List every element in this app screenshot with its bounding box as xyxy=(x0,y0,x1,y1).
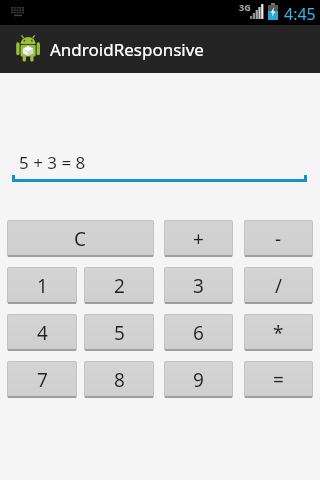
staticText: - xyxy=(275,226,282,252)
button[interactable]: - xyxy=(244,220,313,257)
staticText: AndroidResponsive xyxy=(50,38,204,61)
staticText: C xyxy=(74,226,87,252)
button[interactable]: 8 xyxy=(84,361,154,398)
staticText: 1 xyxy=(37,273,48,299)
staticText: 3 xyxy=(193,273,204,299)
staticText: 5 + 3 = 8 xyxy=(19,151,86,174)
button[interactable]: 3 xyxy=(164,267,233,304)
staticText: * xyxy=(273,320,284,346)
staticText: 9 xyxy=(193,367,204,393)
staticText: + xyxy=(193,226,204,252)
staticText: 6 xyxy=(193,320,204,346)
staticText: 8 xyxy=(114,367,125,393)
staticText: / xyxy=(275,273,283,299)
staticText: 4 xyxy=(37,320,48,346)
button[interactable]: 7 xyxy=(7,361,77,398)
staticText: = xyxy=(273,367,284,393)
button[interactable]: 9 xyxy=(164,361,233,398)
button[interactable]: 6 xyxy=(164,314,233,351)
button[interactable]: 1 xyxy=(7,267,77,304)
button[interactable]: 2 xyxy=(84,267,154,304)
button[interactable]: * xyxy=(244,314,313,351)
staticText: 4:45 xyxy=(284,3,316,25)
button[interactable]: C xyxy=(7,220,154,257)
staticText: 2 xyxy=(114,273,125,299)
button[interactable]: 4 xyxy=(7,314,77,351)
staticText: 5 xyxy=(114,320,125,346)
staticText: 7 xyxy=(37,367,48,393)
button[interactable]: / xyxy=(244,267,313,304)
staticText: 3G xyxy=(239,1,251,13)
button[interactable]: + xyxy=(164,220,233,257)
button[interactable]: = xyxy=(244,361,313,398)
button[interactable]: 5 xyxy=(84,314,154,351)
